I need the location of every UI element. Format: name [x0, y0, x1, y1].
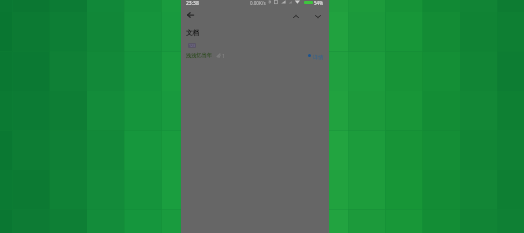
staticText: 123 — [189, 43, 196, 48]
button[interactable]: Next — [311, 9, 325, 23]
button[interactable]: Back — [183, 8, 197, 22]
staticText: 54% — [314, 0, 323, 6]
staticText: 0.00K/s — [250, 0, 266, 6]
staticText: 详情 — [313, 54, 324, 61]
button[interactable]: Previous — [289, 9, 303, 23]
button[interactable]: 详情 — [306, 50, 326, 60]
staticText: 浅浅忆当年 — [186, 52, 212, 59]
staticText: 23:38 — [186, 0, 199, 7]
staticText: 1 — [222, 52, 225, 59]
staticText: 文档 — [186, 29, 200, 37]
button[interactable]: Tag — [188, 43, 196, 48]
